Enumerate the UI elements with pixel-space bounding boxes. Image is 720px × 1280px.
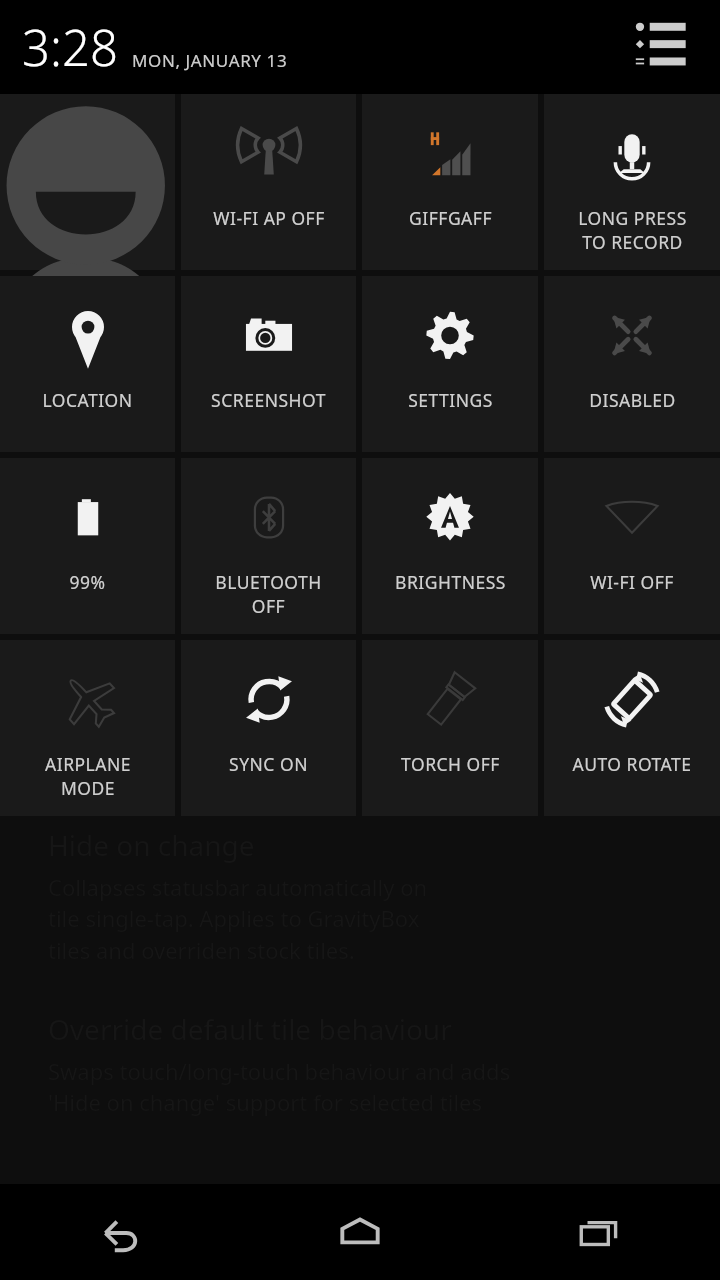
staticText: LOCATION	[42, 388, 133, 412]
button[interactable]: TORCH OFF	[362, 640, 538, 816]
button[interactable]: SCREENSHOT	[181, 276, 356, 452]
button[interactable]: AUTO ROTATE	[544, 640, 720, 816]
staticText: AIRPLANE MODE	[45, 752, 131, 800]
button[interactable]: SYNC ON	[181, 640, 356, 816]
button[interactable]: LOCATION	[0, 276, 175, 452]
staticText: DISABLED	[589, 388, 676, 412]
button[interactable]: 99%	[0, 458, 175, 634]
button[interactable]: GIFFGAFF	[362, 94, 538, 270]
staticText: MON, JANUARY 13	[132, 49, 288, 72]
staticText: BLUETOOTH OFF	[215, 570, 322, 618]
button[interactable]: Quick settings	[630, 19, 688, 71]
staticText: SETTINGS	[408, 388, 493, 412]
button[interactable]: Recents	[480, 1184, 720, 1280]
button[interactable]: WI-FI OFF	[544, 458, 720, 634]
button[interactable]: DISABLED	[544, 276, 720, 452]
staticText: WI-FI OFF	[590, 570, 674, 594]
button[interactable]: BLUETOOTH OFF	[181, 458, 356, 634]
button[interactable]: User	[0, 94, 175, 270]
staticText: TORCH OFF	[401, 752, 500, 776]
staticText: BRIGHTNESS	[395, 570, 506, 594]
staticText: SCREENSHOT	[211, 388, 326, 412]
staticText: SYNC ON	[229, 752, 308, 776]
staticText: WI-FI AP OFF	[213, 206, 325, 230]
staticText: 3:28	[22, 14, 118, 81]
button[interactable]: BRIGHTNESS	[362, 458, 538, 634]
button[interactable]: SETTINGS	[362, 276, 538, 452]
button[interactable]: Back	[0, 1184, 240, 1280]
staticText: LONG PRESS TO RECORD	[578, 206, 687, 254]
staticText: 99%	[69, 570, 106, 594]
button[interactable]: AIRPLANE MODE	[0, 640, 175, 816]
button[interactable]: Home	[240, 1184, 480, 1280]
button[interactable]: LONG PRESS TO RECORD	[544, 94, 720, 270]
staticText: AUTO ROTATE	[572, 752, 692, 776]
staticText: GIFFGAFF	[409, 206, 492, 230]
button[interactable]: WI-FI AP OFF	[181, 94, 356, 270]
